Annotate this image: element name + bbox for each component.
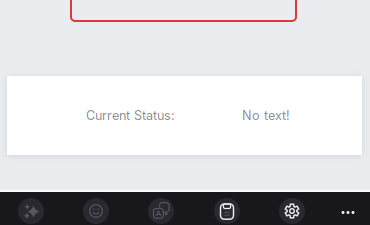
button[interactable]: Writing tools [18,198,44,224]
staticText: Current Status: [86,108,175,123]
button[interactable]: Emoji [83,198,109,224]
button[interactable]: Settings [279,198,305,224]
staticText: No text! [242,108,290,123]
button[interactable]: More [335,199,361,225]
button[interactable]: Translate [148,198,174,224]
button[interactable]: Clipboard [214,198,240,224]
